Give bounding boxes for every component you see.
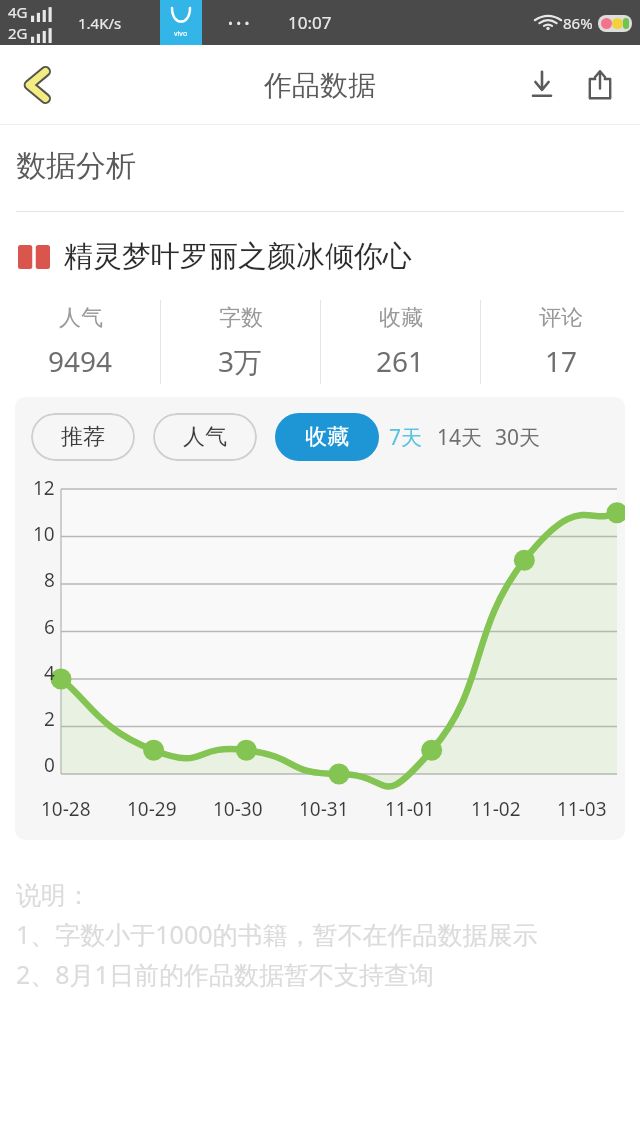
staticText: 17 — [545, 342, 578, 380]
button[interactable]: 14天 — [437, 423, 483, 452]
staticText: 10-31 — [299, 796, 349, 822]
staticText: 收藏 — [305, 423, 349, 451]
staticText: 2 — [44, 706, 55, 728]
staticText: 12 — [33, 475, 55, 497]
staticText: 8 — [44, 567, 55, 589]
staticText: 人气 — [183, 423, 227, 451]
staticText: 3万 — [218, 342, 263, 380]
staticText: 字数 — [219, 304, 263, 332]
staticText: 10:07 — [288, 11, 332, 34]
button[interactable]: 收藏 — [275, 413, 379, 461]
staticText: • • • — [228, 14, 250, 32]
button[interactable]: Share — [574, 59, 626, 111]
staticText: 9494 — [48, 342, 113, 380]
staticText: 说明： — [16, 880, 91, 911]
staticText: 4G — [8, 2, 28, 22]
button[interactable]: 30天 — [495, 423, 541, 452]
staticText: 10-29 — [127, 796, 177, 822]
staticText: 11-01 — [385, 796, 435, 822]
staticText: 10-30 — [213, 796, 263, 822]
staticText: 1、字数小于1000的书籍，暂不在作品数据展示 — [16, 917, 624, 951]
staticText: 作品数据 — [264, 68, 376, 103]
staticText: 评论 — [539, 304, 583, 332]
staticText: 2、8月1日前的作品数据暂不支持查询 — [16, 957, 624, 991]
staticText: 261 — [376, 342, 425, 380]
staticText: 精灵梦叶罗丽之颜冰倾你心 — [64, 238, 412, 275]
button[interactable]: 人气 — [153, 413, 257, 461]
staticText: 0 — [44, 752, 55, 774]
staticText: 收藏 — [379, 304, 423, 332]
staticText: 6 — [44, 614, 55, 636]
button[interactable]: 7天 — [389, 423, 423, 452]
staticText: 11-03 — [557, 796, 607, 822]
button[interactable]: Download — [516, 59, 568, 111]
staticText: 10 — [33, 521, 55, 543]
button[interactable]: Back — [10, 57, 66, 113]
staticText: 1.4K/s — [78, 13, 122, 33]
staticText: 11-02 — [471, 796, 521, 822]
staticText: 2G — [8, 23, 28, 43]
staticText: 人气 — [59, 304, 103, 332]
staticText: 推荐 — [61, 423, 105, 451]
staticText: 10-28 — [41, 796, 91, 822]
staticText: 4 — [44, 660, 55, 682]
staticText: 86% — [563, 13, 593, 33]
staticText: vivo — [174, 29, 188, 39]
staticText: 数据分析 — [16, 147, 136, 185]
button[interactable]: 推荐 — [31, 413, 135, 461]
